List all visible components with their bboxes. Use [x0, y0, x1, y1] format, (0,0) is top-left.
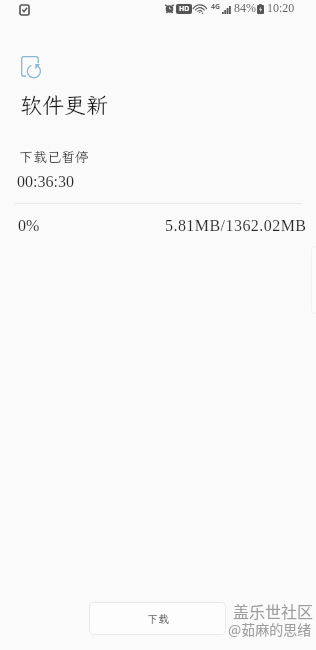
staticText: 0%	[18, 217, 40, 235]
staticText: 00:36:30	[17, 173, 74, 191]
staticText: 84%	[234, 1, 256, 14]
staticText: 软件更新	[20, 90, 109, 119]
button[interactable]: 下载	[89, 602, 226, 635]
other: Software update	[21, 56, 41, 78]
staticText: 盖乐世社区	[233, 599, 314, 622]
staticText: HD	[179, 4, 190, 14]
staticText: 10:20	[267, 1, 295, 14]
staticText: 4G	[211, 2, 221, 12]
staticText: @茹麻的思绪	[228, 619, 312, 639]
staticText: 5.81MB/1362.02MB	[165, 217, 307, 235]
staticText: 下载已暂停	[19, 148, 89, 166]
staticText: 下载	[147, 612, 169, 626]
